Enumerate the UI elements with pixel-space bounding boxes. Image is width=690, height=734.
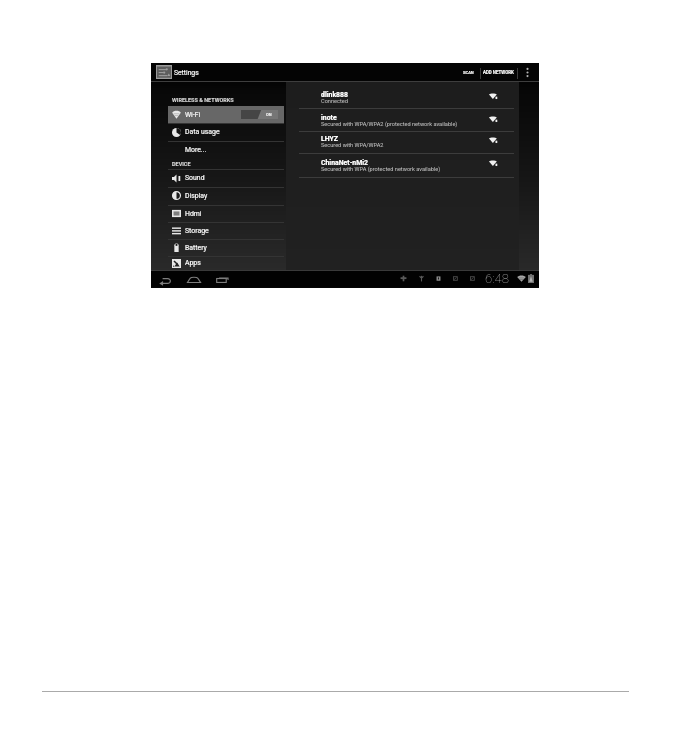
button[interactable]: Back [154, 270, 176, 287]
button[interactable]: LHYZ [286, 131, 519, 153]
staticText: LHYZ [321, 135, 338, 143]
button[interactable]: Sound [168, 169, 284, 187]
staticText: 6:48 [485, 271, 509, 286]
staticText: ON [266, 112, 272, 117]
staticText: Battery [185, 244, 207, 252]
button[interactable]: dlink888 [286, 82, 519, 108]
staticText: WIRELESS & NETWORKS [172, 97, 234, 103]
button[interactable]: SCAN [456, 63, 480, 82]
button[interactable]: ChinaNet-nMi2 [286, 153, 519, 177]
staticText: ChinaNet-nMi2 [321, 159, 369, 167]
staticText: Data usage [185, 128, 220, 136]
button[interactable]: Home [182, 270, 206, 287]
button[interactable]: Wi-Fi [168, 106, 284, 123]
staticText: Sound [185, 174, 205, 182]
button[interactable]: Recent apps [211, 270, 235, 287]
staticText: ADD NETWORK [483, 70, 514, 75]
staticText: Connected [321, 98, 348, 105]
staticText: Hdmi [185, 210, 202, 218]
staticText: More... [185, 146, 207, 154]
staticText: Secured with WPA (protected network avai… [321, 166, 441, 173]
staticText: Secured with WPA/WPA2 [321, 142, 384, 149]
button[interactable]: Wi-Fi switch, on [241, 110, 278, 119]
button[interactable]: Settings [156, 65, 172, 79]
staticText: Display [185, 192, 208, 200]
button[interactable]: Storage [168, 222, 284, 239]
button[interactable]: Hdmi [168, 205, 284, 222]
button[interactable]: More options [521, 63, 533, 82]
button[interactable]: More... [168, 141, 284, 158]
staticText: Storage [185, 227, 209, 235]
staticText: Apps [185, 259, 201, 267]
staticText: Secured with WPA/WPA2 (protected network… [321, 121, 458, 128]
button[interactable]: Display [168, 187, 284, 204]
button[interactable]: Data usage [168, 123, 284, 141]
button[interactable]: ADD NETWORK [481, 63, 515, 82]
button[interactable]: inote [286, 108, 519, 131]
staticText: inote [321, 114, 337, 122]
staticText: Settings [174, 69, 199, 77]
button[interactable]: Battery [168, 239, 284, 256]
staticText: SCAN [463, 70, 474, 75]
button[interactable]: Apps [168, 256, 284, 270]
staticText: Wi-Fi [185, 111, 201, 119]
staticText: DEVICE [172, 161, 191, 167]
staticText: dlink888 [321, 91, 348, 99]
